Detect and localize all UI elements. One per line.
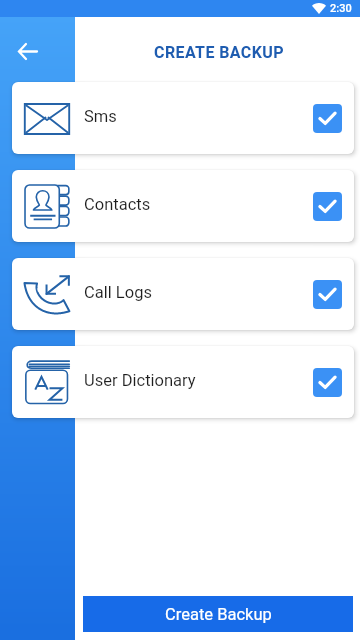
staticText: Create Backup xyxy=(165,605,272,624)
staticText: Sms xyxy=(84,107,117,126)
button[interactable]: Contacts xyxy=(12,170,354,242)
button[interactable]: User Dictionary xyxy=(12,346,354,418)
staticText: 2:30 xyxy=(330,2,352,15)
button[interactable]: Toggle Call Logs xyxy=(313,280,342,309)
staticText: User Dictionary xyxy=(84,371,196,390)
button[interactable]: Call Logs xyxy=(12,258,354,330)
button[interactable]: Toggle Contacts xyxy=(313,192,342,221)
staticText: Call Logs xyxy=(84,283,152,302)
button[interactable]: Sms xyxy=(12,82,354,154)
button[interactable]: Toggle Sms xyxy=(313,104,342,133)
button[interactable]: Create Backup xyxy=(83,596,353,632)
staticText: CREATE BACKUP xyxy=(154,43,284,62)
button[interactable]: Toggle User Dictionary xyxy=(313,368,342,397)
button[interactable]: Back xyxy=(10,34,45,69)
staticText: Contacts xyxy=(84,195,151,214)
